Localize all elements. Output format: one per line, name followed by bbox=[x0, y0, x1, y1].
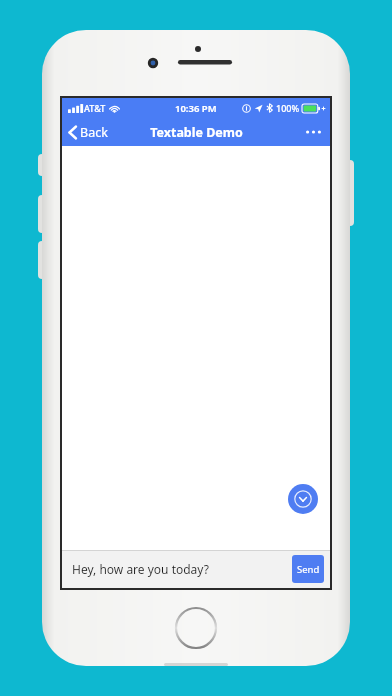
staticText: Back bbox=[80, 124, 108, 141]
staticText: AT&T bbox=[84, 102, 106, 114]
button[interactable]: More options bbox=[297, 118, 330, 146]
staticText: 100% bbox=[276, 102, 300, 114]
button[interactable]: Hey, how are you today? bbox=[62, 550, 292, 588]
staticText: 10:36 PM bbox=[175, 102, 217, 115]
button[interactable]: Back bbox=[62, 118, 118, 146]
staticText: Textable Demo bbox=[150, 124, 243, 141]
staticText: Send bbox=[297, 563, 320, 576]
button[interactable]: Scroll to latest message bbox=[288, 484, 318, 514]
staticText: Hey, how are you today? bbox=[72, 561, 209, 577]
button[interactable]: Send bbox=[292, 555, 324, 583]
